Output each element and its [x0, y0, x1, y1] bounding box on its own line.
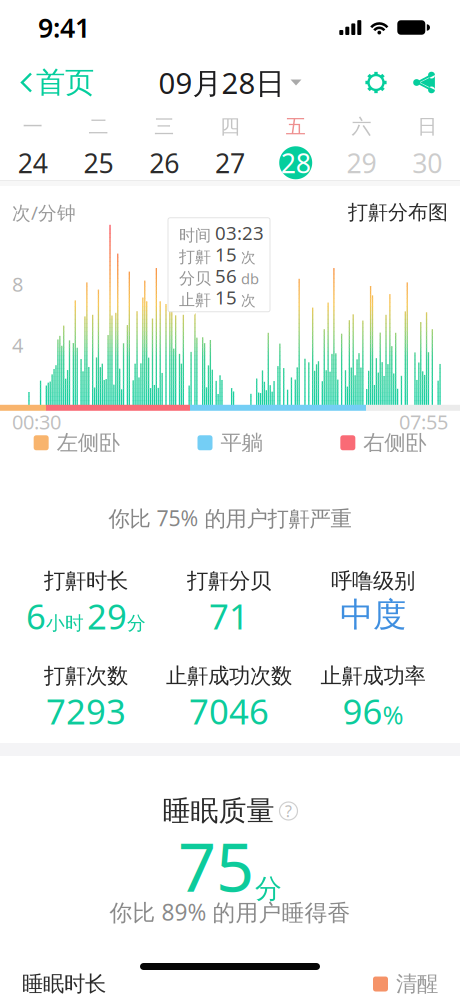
staticText: 清醒 [396, 971, 438, 996]
staticText: 07:55 [399, 408, 448, 435]
staticText: 次 [241, 249, 256, 267]
staticText: 首页 [36, 64, 94, 100]
staticText: 7293 [46, 688, 126, 734]
button[interactable]: 09月28日 [152, 55, 307, 110]
staticText: 29 [346, 145, 376, 180]
staticText: 止鼾成功次数 [166, 663, 292, 689]
staticText: 五 [286, 114, 306, 139]
staticText: 29 [87, 593, 127, 639]
staticText: 你比 75% 的用户打鼾严重 [108, 504, 351, 532]
staticText: 分 [255, 872, 282, 905]
staticText: 日 [417, 114, 437, 139]
staticText: db [241, 269, 259, 288]
staticText: 96 [342, 688, 382, 734]
staticText: 打鼾 [179, 247, 211, 267]
staticText: 三 [154, 114, 174, 139]
staticText: 止鼾成功率 [320, 663, 425, 689]
staticText: 一 [23, 114, 43, 139]
staticText: 25 [84, 145, 114, 180]
staticText: 次 [241, 292, 256, 310]
button[interactable]: 三 [131, 104, 197, 186]
staticText: 止鼾 [179, 290, 211, 310]
staticText: 中度 [340, 594, 406, 635]
button[interactable]: 六 [329, 104, 394, 186]
staticText: 6 [26, 593, 46, 639]
staticText: 15 [215, 285, 237, 310]
staticText: ? [285, 800, 292, 822]
staticText: 28 [281, 145, 311, 180]
staticText: 00:30 [12, 408, 61, 435]
staticText: % [382, 698, 403, 731]
staticText: 27 [215, 145, 245, 180]
staticText: 打鼾次数 [44, 663, 128, 689]
staticText: 71 [209, 593, 249, 639]
staticText: 09月28日 [158, 63, 284, 102]
staticText: 56 [215, 263, 237, 288]
staticText: 左侧卧 [57, 430, 120, 456]
button[interactable]: 二 [66, 104, 131, 186]
staticText: 打鼾分贝 [187, 568, 271, 594]
staticText: 分贝 [179, 268, 211, 288]
staticText: 睡眠时长 [22, 971, 106, 996]
staticText: 打鼾时长 [44, 568, 128, 594]
staticText: 二 [89, 114, 109, 139]
staticText: 30 [412, 145, 442, 180]
staticText: 8 [12, 271, 23, 297]
staticText: 打鼾分布图 [348, 200, 448, 225]
staticText: 四 [220, 114, 240, 139]
staticText: 呼噜级别 [331, 568, 415, 594]
staticText: 24 [18, 145, 48, 180]
staticText: 9:41 [38, 10, 90, 45]
staticText: 睡眠质量 [162, 794, 274, 828]
staticText: 右侧卧 [363, 430, 426, 456]
staticText: 75 [178, 822, 254, 910]
staticText: 7046 [189, 688, 269, 734]
staticText: 你比 89% 的用户睡得香 [109, 897, 350, 927]
staticText: 次/分钟 [12, 200, 76, 225]
staticText: 平躺 [220, 430, 262, 456]
staticText: 4 [12, 332, 23, 358]
staticText: 03:23 [215, 220, 264, 245]
button[interactable]: 一 [0, 104, 66, 186]
button[interactable]: 日 [394, 104, 460, 186]
button[interactable]: 四 [197, 104, 263, 186]
staticText: 26 [149, 145, 179, 180]
staticText: 六 [351, 114, 371, 139]
button[interactable]: 设置 [359, 65, 393, 99]
staticText: 时间 [179, 225, 211, 245]
button[interactable]: 首页 [20, 54, 102, 110]
button[interactable]: 五 [263, 104, 329, 186]
staticText: 15 [215, 242, 237, 267]
staticText: 分 [127, 612, 146, 635]
staticText: 小时 [46, 612, 84, 635]
button[interactable]: 分享 [409, 67, 440, 97]
